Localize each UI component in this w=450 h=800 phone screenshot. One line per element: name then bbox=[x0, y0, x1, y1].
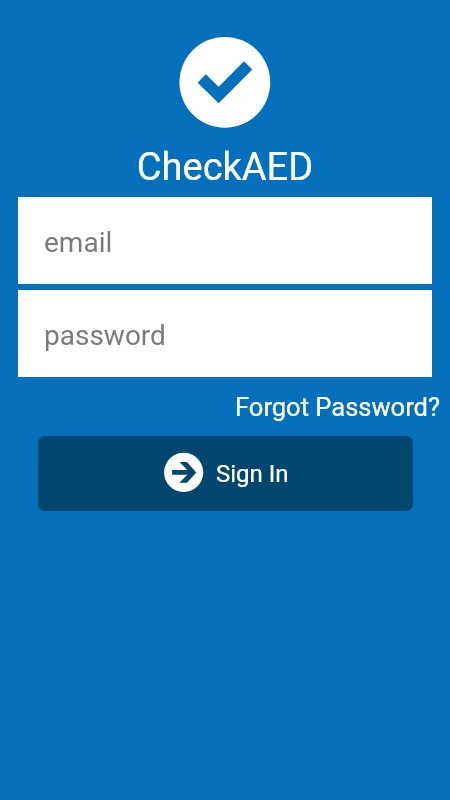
button[interactable]: password bbox=[18, 290, 432, 377]
staticText: CheckAED bbox=[0, 145, 450, 190]
button[interactable]: Sign In bbox=[38, 436, 413, 511]
staticText: Forgot Password? bbox=[235, 392, 440, 422]
button[interactable]: Forgot Password? bbox=[235, 392, 450, 422]
other: CheckAED logo bbox=[179, 36, 272, 129]
staticText: email bbox=[44, 226, 113, 259]
staticText: password bbox=[44, 319, 166, 352]
staticText: Sign In bbox=[216, 460, 289, 488]
button[interactable]: email bbox=[18, 197, 432, 284]
